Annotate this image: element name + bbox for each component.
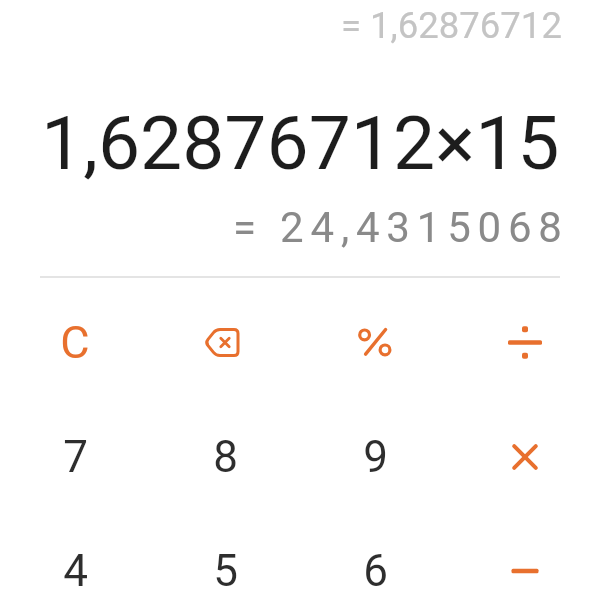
button[interactable] [450,514,600,600]
button[interactable] [150,286,300,399]
staticText: 1,62876712×15 [41,99,560,187]
button[interactable]: 5 [150,514,300,600]
staticText: 9 [363,431,388,483]
staticText: 4 [63,545,88,597]
button[interactable] [450,400,600,513]
staticText: = 24,4315068 [233,203,569,252]
button[interactable]: 4 [0,514,150,600]
button[interactable]: 7 [0,400,150,513]
button[interactable]: C [0,286,150,399]
staticText: = 1,62876712 [341,4,562,47]
button[interactable]: 9 [300,400,450,513]
staticText: 7 [63,431,88,483]
staticText: 6 [363,545,388,597]
button[interactable] [300,286,450,399]
button[interactable]: 6 [300,514,450,600]
staticText: C [60,316,90,369]
staticText: 5 [213,545,238,597]
button[interactable]: 8 [150,400,300,513]
button[interactable] [450,286,600,399]
staticText: 8 [213,431,238,483]
